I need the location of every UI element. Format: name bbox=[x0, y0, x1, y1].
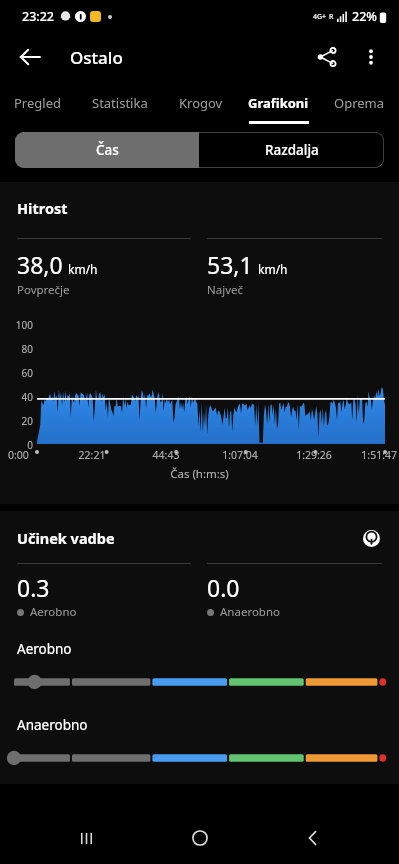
staticText: km/h bbox=[68, 261, 98, 277]
staticText: Hitrost bbox=[17, 198, 68, 218]
staticText: Anaerobno bbox=[220, 604, 281, 620]
staticText: 1:29:26 bbox=[277, 448, 351, 462]
button[interactable]: Pregled bbox=[0, 82, 74, 124]
staticText: Največ bbox=[207, 282, 244, 298]
staticText: 44:43 bbox=[129, 448, 203, 462]
button[interactable]: Krogov bbox=[165, 82, 237, 124]
staticText: Statistika bbox=[92, 94, 148, 112]
staticText: 4G+ bbox=[313, 12, 327, 22]
staticText: 38,0 bbox=[17, 249, 63, 280]
button[interactable]: More options bbox=[349, 35, 393, 79]
staticText: 1:51:47 bbox=[351, 448, 397, 462]
staticText: 60 bbox=[21, 366, 33, 380]
button[interactable]: Share bbox=[305, 35, 349, 79]
staticText: Oprema bbox=[334, 94, 385, 112]
staticText: 53,1 bbox=[207, 249, 253, 280]
staticText: 0 bbox=[27, 438, 33, 452]
button[interactable]: Razdalja bbox=[199, 132, 384, 168]
staticText: 80 bbox=[21, 342, 33, 356]
staticText: R bbox=[329, 12, 334, 22]
staticText: km/h bbox=[258, 261, 288, 277]
staticText: Krogov bbox=[179, 94, 223, 112]
staticText: 0.0 bbox=[207, 572, 240, 603]
staticText: Ostalo bbox=[70, 46, 123, 69]
button[interactable]: Recent apps bbox=[58, 812, 114, 864]
button[interactable]: Statistika bbox=[74, 82, 165, 124]
staticText: 0:00 bbox=[8, 448, 55, 462]
staticText: 20 bbox=[21, 414, 33, 428]
button[interactable]: Help bbox=[360, 527, 382, 549]
staticText: 40 bbox=[21, 390, 33, 404]
button[interactable]: Oprema bbox=[320, 82, 399, 124]
staticText: 22% bbox=[352, 8, 377, 25]
staticText: Čas bbox=[96, 141, 119, 159]
staticText: Pregled bbox=[14, 94, 61, 112]
staticText: 0.3 bbox=[17, 572, 50, 603]
staticText: 23:22 bbox=[22, 8, 55, 25]
staticText: Razdalja bbox=[265, 141, 319, 159]
staticText: Aerobno bbox=[30, 604, 77, 620]
button[interactable]: Home bbox=[172, 812, 228, 864]
staticText: Aerobno bbox=[17, 640, 72, 658]
button[interactable]: Čas bbox=[15, 132, 199, 168]
staticText: 100 bbox=[15, 318, 33, 332]
button[interactable]: Back bbox=[8, 35, 52, 79]
staticText: Učinek vadbe bbox=[17, 528, 115, 548]
staticText: Anaerobno bbox=[17, 716, 88, 734]
staticText: Čas (h:m:s) bbox=[0, 466, 399, 482]
staticText: 22:21 bbox=[55, 448, 129, 462]
staticText: Grafikoni bbox=[248, 94, 309, 112]
staticText: Povprečje bbox=[17, 282, 70, 298]
button[interactable]: Back bbox=[285, 812, 341, 864]
staticText: 1:07:04 bbox=[203, 448, 277, 462]
button[interactable]: Grafikoni bbox=[237, 82, 320, 124]
